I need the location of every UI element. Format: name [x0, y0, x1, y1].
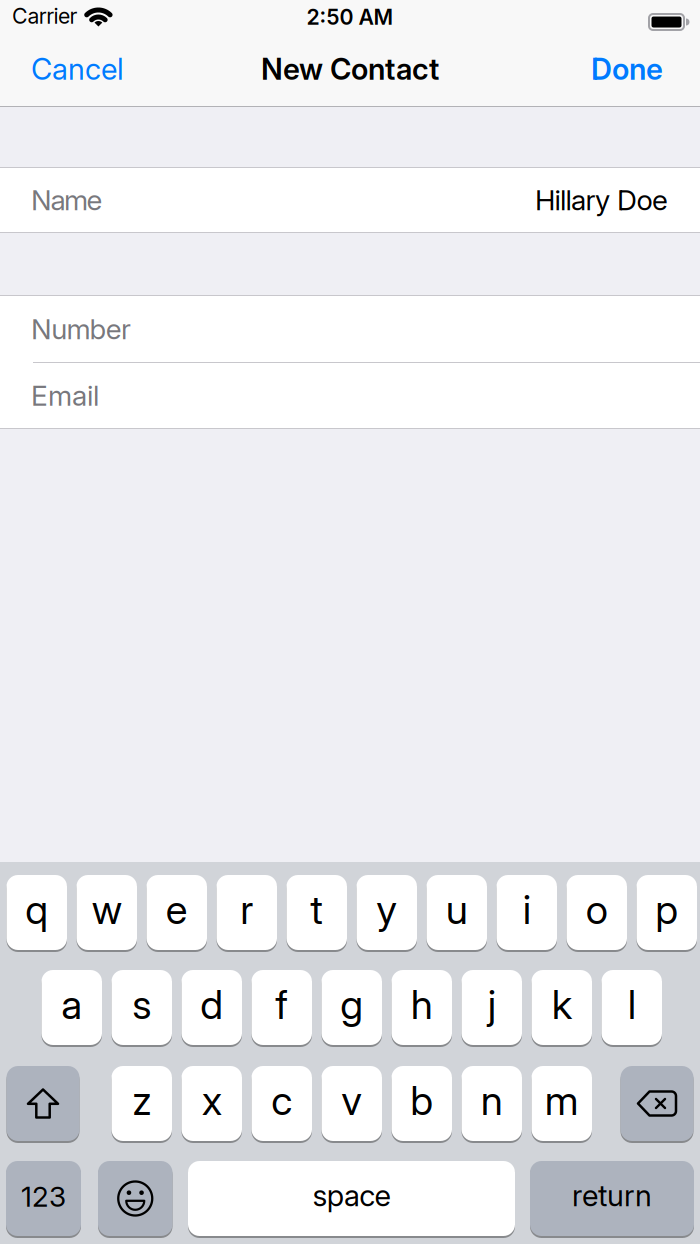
button[interactable]	[98, 1161, 172, 1236]
staticText: h	[411, 981, 433, 1028]
button[interactable]: Email	[0, 363, 700, 428]
staticText: Carrier	[12, 3, 77, 29]
staticText: i	[523, 886, 531, 933]
button[interactable]: q	[6, 875, 67, 950]
button[interactable]: space	[188, 1161, 515, 1236]
button[interactable]: h	[391, 970, 452, 1045]
staticText: b	[410, 1077, 433, 1124]
staticText: f	[275, 981, 288, 1028]
staticText: s	[132, 981, 151, 1028]
staticText: n	[481, 1077, 503, 1124]
staticText: z	[132, 1077, 151, 1124]
staticText: space	[313, 1178, 390, 1213]
staticText: j	[488, 981, 496, 1028]
button[interactable]	[6, 1066, 79, 1141]
button[interactable]: m	[531, 1066, 592, 1141]
staticText: w	[92, 886, 122, 933]
button[interactable]: o	[566, 875, 627, 950]
button[interactable]: w	[76, 875, 137, 950]
staticText: c	[271, 1077, 292, 1124]
staticText: u	[446, 886, 468, 933]
button[interactable]: k	[531, 970, 592, 1045]
staticText: 123	[21, 1180, 66, 1213]
staticText: y	[376, 886, 397, 933]
staticText: e	[166, 886, 188, 933]
staticText: New Contact	[261, 52, 439, 86]
staticText: Email	[31, 379, 99, 412]
button[interactable]: d	[181, 970, 242, 1045]
button[interactable]: c	[251, 1066, 312, 1141]
button[interactable]: g	[321, 970, 382, 1045]
staticText: t	[310, 886, 323, 933]
button[interactable]	[620, 1066, 693, 1141]
button[interactable]: Name	[0, 168, 700, 232]
button[interactable]: f	[251, 970, 312, 1045]
button[interactable]: i	[496, 875, 557, 950]
staticText: d	[200, 981, 223, 1028]
button[interactable]: s	[111, 970, 172, 1045]
button[interactable]: z	[111, 1066, 172, 1141]
button[interactable]: Number	[0, 296, 700, 362]
button[interactable]: b	[391, 1066, 452, 1141]
button[interactable]: 123	[6, 1161, 81, 1236]
staticText: p	[655, 886, 678, 933]
button[interactable]: u	[426, 875, 487, 950]
button[interactable]: return	[530, 1161, 694, 1236]
staticText: k	[552, 981, 572, 1028]
button[interactable]: a	[41, 970, 102, 1045]
staticText: return	[572, 1178, 652, 1213]
staticText: r	[240, 886, 253, 933]
staticText: g	[340, 981, 363, 1028]
staticText: Name	[31, 183, 102, 216]
button[interactable]: x	[181, 1066, 242, 1141]
button[interactable]: n	[461, 1066, 522, 1141]
staticText: 2:50 AM	[306, 4, 393, 30]
button[interactable]: Cancel	[31, 56, 124, 90]
staticText: Hillary Doe	[535, 183, 668, 216]
button[interactable]: p	[636, 875, 697, 950]
staticText: m	[545, 1077, 579, 1124]
staticText: v	[341, 1077, 362, 1124]
staticText: q	[25, 886, 48, 933]
staticText: a	[61, 981, 82, 1028]
staticText: l	[628, 981, 636, 1028]
staticText: Cancel	[31, 52, 124, 86]
button[interactable]: l	[601, 970, 662, 1045]
staticText: Number	[31, 312, 131, 345]
button[interactable]: r	[216, 875, 277, 950]
button[interactable]: y	[356, 875, 417, 950]
staticText: x	[202, 1077, 222, 1124]
button[interactable]: Done	[591, 56, 663, 90]
staticText: Done	[591, 52, 663, 86]
button[interactable]: v	[321, 1066, 382, 1141]
button[interactable]: t	[286, 875, 347, 950]
button[interactable]: e	[146, 875, 207, 950]
staticText: o	[586, 886, 608, 933]
button[interactable]: j	[461, 970, 522, 1045]
